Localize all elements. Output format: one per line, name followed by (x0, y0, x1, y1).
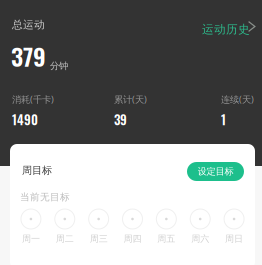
button[interactable]: 周三 (82, 209, 116, 244)
staticText: 总运动 (12, 18, 45, 31)
staticText: 运动历史 (202, 22, 250, 37)
staticText: 1490 (12, 110, 38, 129)
button[interactable]: 周一 (14, 209, 48, 244)
staticText: 379 (11, 38, 46, 74)
staticText: 累计(天) (114, 93, 147, 105)
button[interactable]: 周日 (217, 209, 251, 244)
staticText: 周六 (191, 233, 209, 244)
staticText: 周一 (22, 233, 40, 244)
button[interactable]: 周五 (149, 209, 183, 244)
staticText: 分钟 (50, 60, 68, 72)
staticText: 39 (114, 110, 127, 129)
staticText: 周二 (56, 233, 74, 244)
button[interactable]: 设定目标 (187, 162, 244, 181)
button[interactable]: 周六 (183, 209, 217, 244)
staticText: 1 (221, 110, 226, 129)
button[interactable]: 周二 (48, 209, 82, 244)
staticText: 周四 (123, 233, 141, 244)
staticText: 消耗(千卡) (12, 93, 54, 105)
staticText: 周目标 (22, 164, 52, 177)
staticText: 周五 (157, 233, 175, 244)
staticText: 连续(天) (221, 93, 254, 105)
button[interactable]: 运动历史 (202, 20, 256, 36)
staticText: 周三 (90, 233, 108, 244)
staticText: 当前无目标 (20, 191, 70, 203)
button[interactable]: 周四 (116, 209, 149, 244)
staticText: 周日 (225, 233, 243, 244)
staticText: 设定目标 (197, 166, 233, 177)
